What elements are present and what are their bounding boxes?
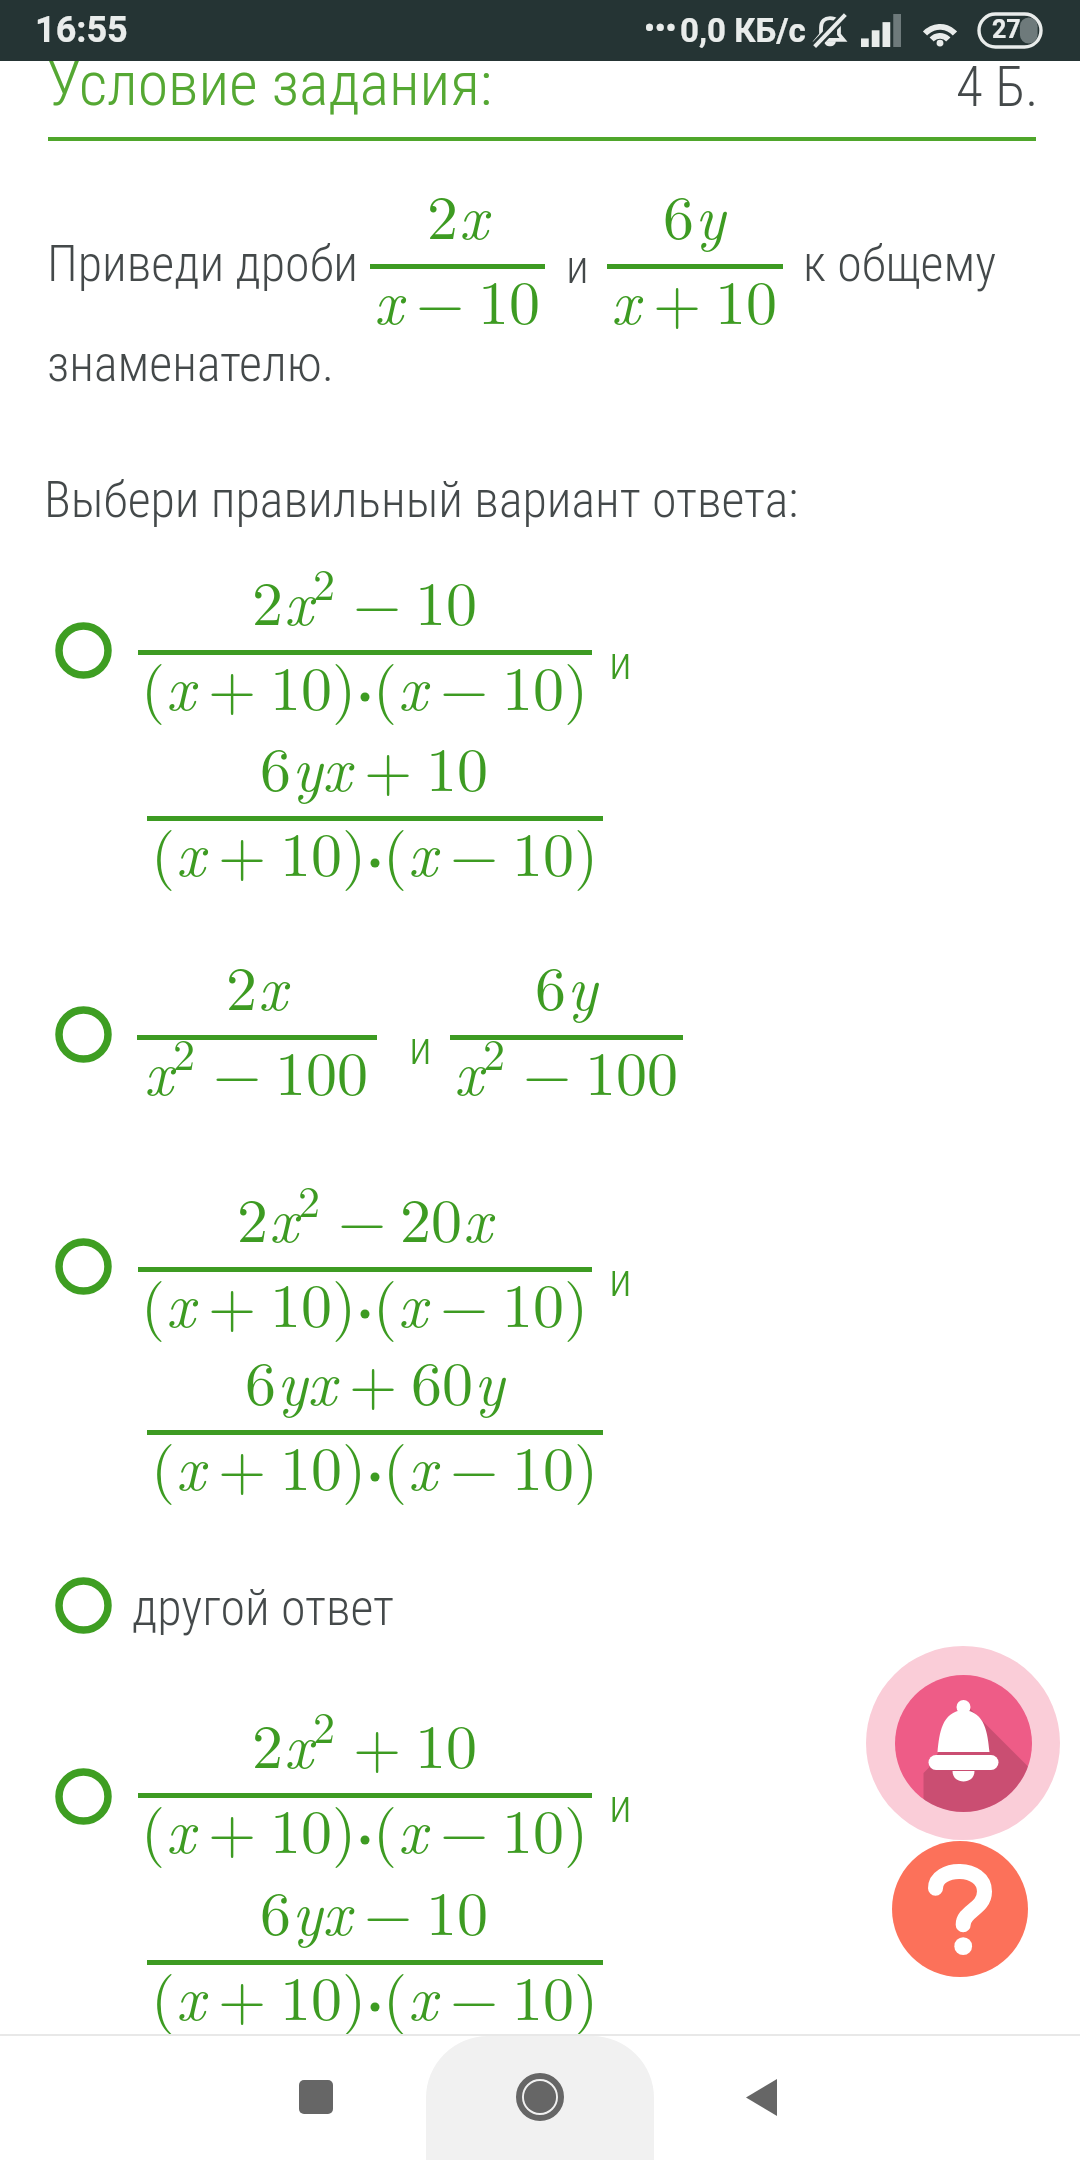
- staticText: yx: [292, 1865, 351, 1953]
- staticText: 2: [483, 1020, 505, 1082]
- staticText: 10): [280, 1420, 367, 1508]
- staticText: 2: [237, 1172, 269, 1260]
- staticText: x: [398, 1257, 427, 1345]
- staticText: 10): [502, 640, 589, 728]
- staticText: Приведи дроби: [47, 235, 359, 294]
- staticText: 10): [270, 1257, 357, 1345]
- staticText: (: [373, 1783, 398, 1871]
- staticText: (: [151, 1420, 176, 1508]
- staticText: 10: [426, 1865, 489, 1953]
- staticText: 16:55: [35, 9, 128, 51]
- staticText: +: [218, 1950, 267, 2038]
- staticText: 10: [415, 555, 478, 643]
- staticText: x: [176, 1950, 205, 2038]
- staticText: 0,0 КБ/с: [680, 11, 806, 50]
- staticText: x: [269, 1172, 298, 1260]
- staticText: 10): [280, 806, 367, 894]
- button[interactable]: Вариант 2: [43, 994, 123, 1074]
- staticText: x: [408, 1420, 437, 1508]
- staticText: x: [144, 1025, 173, 1113]
- staticText: 10): [512, 806, 599, 894]
- staticText: y: [567, 940, 598, 1028]
- staticText: 10: [426, 721, 489, 809]
- staticText: −: [450, 806, 499, 894]
- staticText: 60: [411, 1335, 474, 1423]
- staticText: y: [695, 169, 726, 257]
- button[interactable]: Вариант 4: [43, 1565, 123, 1645]
- staticText: x: [408, 806, 437, 894]
- staticText: и: [609, 1253, 632, 1307]
- staticText: 10: [715, 254, 778, 342]
- staticText: другой ответ: [132, 1579, 395, 1638]
- staticText: x: [408, 1950, 437, 2038]
- staticText: 6: [260, 1865, 292, 1953]
- staticText: 10): [502, 1783, 589, 1871]
- staticText: −: [450, 1950, 499, 2038]
- staticText: +: [208, 1257, 257, 1345]
- staticText: +: [653, 254, 702, 342]
- staticText: 2: [252, 555, 284, 643]
- button[interactable]: Recent apps: [226, 2034, 406, 2160]
- staticText: 10): [512, 1420, 599, 1508]
- staticText: (: [151, 806, 176, 894]
- staticText: 10): [270, 640, 357, 728]
- staticText: 2: [313, 550, 335, 612]
- staticText: x: [258, 940, 287, 1028]
- staticText: x: [398, 1783, 427, 1871]
- staticText: 2: [173, 1020, 195, 1082]
- button[interactable]: Вариант 1: [43, 610, 123, 690]
- staticText: 2: [427, 169, 459, 257]
- staticText: x: [166, 1257, 195, 1345]
- staticText: +: [349, 1335, 398, 1423]
- staticText: (: [151, 1950, 176, 2038]
- button[interactable]: Вариант 3: [43, 1226, 123, 1306]
- staticText: x: [454, 1025, 483, 1113]
- staticText: 10: [415, 1698, 478, 1786]
- staticText: −: [440, 640, 489, 728]
- staticText: и: [609, 636, 632, 690]
- staticText: 20: [400, 1172, 463, 1260]
- staticText: −: [416, 254, 465, 342]
- staticText: −: [353, 555, 402, 643]
- staticText: •••: [644, 10, 677, 45]
- staticText: +: [353, 1698, 402, 1786]
- staticText: x: [176, 1420, 205, 1508]
- staticText: x: [611, 254, 640, 342]
- staticText: 2: [226, 940, 258, 1028]
- staticText: +: [208, 1783, 257, 1871]
- staticText: и: [566, 240, 589, 294]
- button[interactable]: Back: [671, 2034, 851, 2160]
- staticText: −: [213, 1025, 262, 1113]
- staticText: 2: [298, 1167, 320, 1229]
- staticText: +: [218, 1420, 267, 1508]
- staticText: −: [338, 1172, 387, 1260]
- staticText: x: [284, 555, 313, 643]
- staticText: (: [383, 1950, 408, 2038]
- staticText: 100: [585, 1025, 679, 1113]
- staticText: y: [474, 1335, 505, 1423]
- staticText: 100: [275, 1025, 369, 1113]
- staticText: x: [284, 1698, 313, 1786]
- button[interactable]: Вариант 5: [43, 1756, 123, 1836]
- staticText: 6: [245, 1335, 277, 1423]
- staticText: 10): [512, 1950, 599, 2038]
- staticText: x: [374, 254, 403, 342]
- button[interactable]: Home: [450, 2034, 630, 2160]
- staticText: (: [383, 806, 408, 894]
- staticText: x: [176, 806, 205, 894]
- staticText: +: [208, 640, 257, 728]
- staticText: −: [523, 1025, 572, 1113]
- staticText: Выбери правильный вариант ответа:: [44, 471, 799, 530]
- staticText: 6: [663, 169, 695, 257]
- staticText: x: [463, 1172, 492, 1260]
- staticText: 10): [270, 1783, 357, 1871]
- button[interactable]: другой ответ: [124, 1573, 403, 1644]
- staticText: (: [141, 640, 166, 728]
- staticText: (: [373, 640, 398, 728]
- staticText: −: [440, 1783, 489, 1871]
- button[interactable]: Уведомления: [866, 1646, 1060, 1840]
- staticText: x: [166, 640, 195, 728]
- staticText: 4 Б.: [956, 55, 1039, 119]
- button[interactable]: Помощь: [892, 1841, 1028, 1977]
- staticText: (: [373, 1257, 398, 1345]
